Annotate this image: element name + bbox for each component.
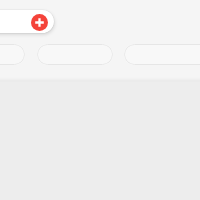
button[interactable]: Add (31, 14, 48, 31)
button[interactable]: Filter 1 (0, 44, 25, 65)
button[interactable]: Filter 2 (37, 44, 113, 65)
button[interactable]: Filter 3 (124, 44, 200, 65)
button[interactable]: Search (0, 10, 54, 33)
